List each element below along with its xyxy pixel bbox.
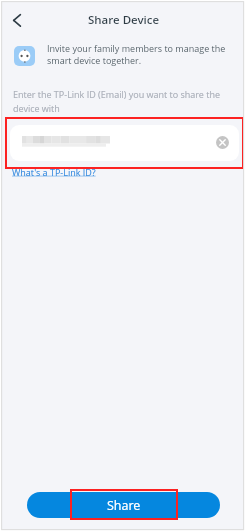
staticText: Enter the TP-Link ID (Email) you want to… bbox=[13, 88, 225, 115]
button[interactable]: Share bbox=[27, 492, 220, 518]
staticText: Share bbox=[107, 497, 141, 514]
button[interactable]: Clear text bbox=[10, 125, 239, 161]
button[interactable]: Back bbox=[3, 7, 31, 35]
staticText: Share Device bbox=[88, 12, 160, 28]
button[interactable]: Clear text bbox=[216, 136, 229, 149]
button[interactable]: What's a TP-Link ID? bbox=[12, 166, 96, 178]
staticText: Invite your family members to manage the… bbox=[47, 42, 231, 66]
